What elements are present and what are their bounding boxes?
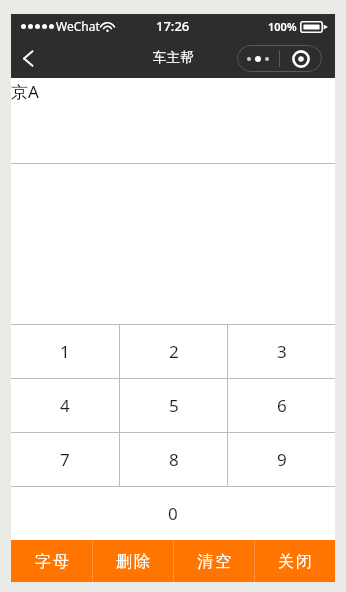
staticText: 清空 [196,552,232,572]
button[interactable]: Close mini program [280,45,322,72]
staticText: 京A [11,80,39,103]
button[interactable]: 3 [228,325,335,378]
staticText: 3 [277,340,287,363]
button[interactable]: 0 [11,487,335,540]
staticText: 车主帮 [153,49,194,66]
staticText: 100% [268,19,297,34]
staticText: 17:26 [156,17,190,35]
button[interactable]: 字母 [11,540,92,582]
staticText: 8 [169,448,179,471]
staticText: 1 [60,340,70,363]
button[interactable]: 6 [228,379,335,432]
button[interactable]: 关闭 [255,540,335,582]
button[interactable]: 4 [11,379,119,432]
button[interactable]: 清空 [174,540,254,582]
staticText: 关闭 [277,552,313,572]
staticText: 字母 [34,552,70,572]
staticText: 删除 [115,552,151,572]
staticText: 9 [277,448,287,471]
staticText: 7 [60,448,70,471]
staticText: 2 [169,340,179,363]
button[interactable]: Back [11,38,55,78]
button[interactable]: 7 [11,433,119,486]
staticText: 6 [277,394,287,417]
staticText: 4 [60,394,70,417]
button[interactable]: 删除 [93,540,173,582]
staticText: WeChat [56,18,100,34]
staticText: 0 [168,502,178,525]
button[interactable]: More options [237,45,279,72]
staticText: 5 [169,394,179,417]
button[interactable]: 1 [11,325,119,378]
button[interactable]: 9 [228,433,335,486]
button[interactable]: 2 [120,325,227,378]
button[interactable]: 5 [120,379,227,432]
button[interactable]: 8 [120,433,227,486]
